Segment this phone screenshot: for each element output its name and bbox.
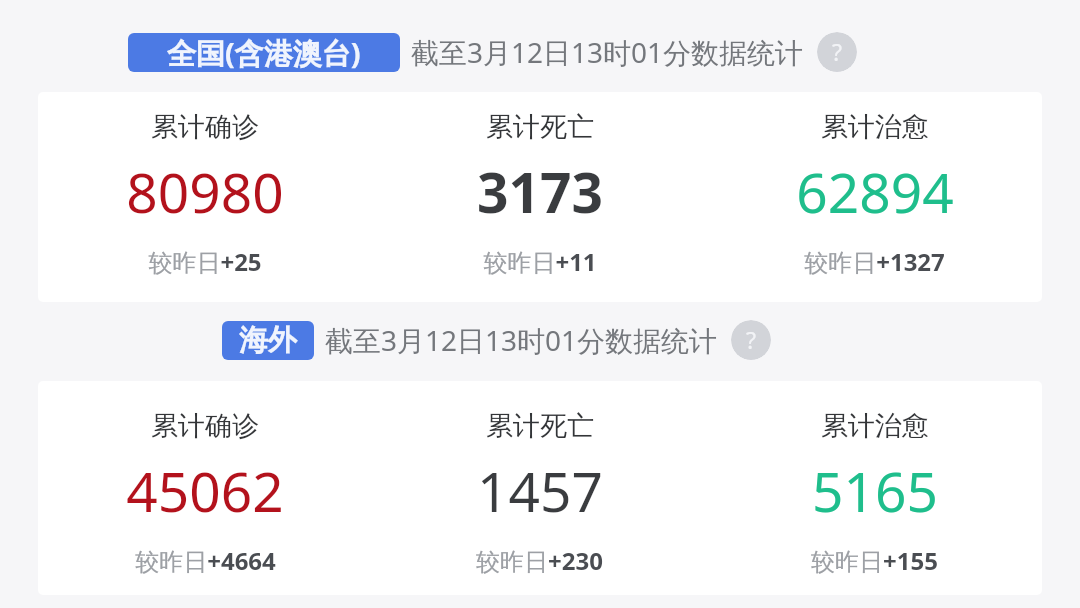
button[interactable]: 累计确诊 (38, 409, 372, 577)
staticText: 截至3月12日13时01分数据统计 (411, 33, 804, 71)
button[interactable]: 全国(含港澳台) (128, 33, 400, 72)
staticText: ? (746, 324, 757, 356)
staticText: 80980 (126, 154, 284, 229)
staticText: 较昨日+155 (811, 544, 938, 577)
staticText: 较昨日+1327 (804, 245, 945, 278)
staticText: 累计确诊 (151, 409, 259, 443)
staticText: 62894 (796, 154, 954, 229)
staticText: 累计死亡 (486, 110, 594, 144)
button[interactable]: Help about 海外 data (731, 320, 771, 360)
staticText: 累计死亡 (486, 409, 594, 443)
button[interactable]: 累计死亡 (372, 110, 707, 278)
button[interactable]: 累计确诊 (38, 110, 372, 278)
staticText: 1457 (477, 453, 603, 528)
staticText: 较昨日+11 (483, 245, 597, 278)
staticText: 海外 (239, 322, 297, 359)
staticText: 3173 (477, 154, 603, 229)
staticText: 累计治愈 (821, 110, 929, 144)
staticText: 5165 (812, 453, 938, 528)
staticText: 较昨日+230 (476, 544, 603, 577)
staticText: ? (832, 36, 843, 68)
button[interactable]: 累计死亡 (372, 409, 707, 577)
button[interactable]: 海外 (222, 321, 314, 360)
staticText: 累计治愈 (821, 409, 929, 443)
staticText: 截至3月12日13时01分数据统计 (325, 321, 718, 359)
staticText: 较昨日+4664 (135, 544, 276, 577)
button[interactable]: 累计治愈 (707, 409, 1042, 577)
staticText: 45062 (126, 453, 284, 528)
button[interactable]: Help about 全国(含港澳台) data (817, 32, 857, 72)
button[interactable]: 累计治愈 (707, 110, 1042, 278)
staticText: 累计确诊 (151, 110, 259, 144)
staticText: 全国(含港澳台) (167, 33, 361, 72)
staticText: 较昨日+25 (148, 245, 262, 278)
